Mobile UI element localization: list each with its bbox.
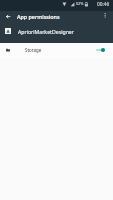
staticText: Storage: [25, 47, 42, 53]
button[interactable]: Toggle Storage permission: [96, 43, 105, 57]
button[interactable]: Storage: [0, 43, 113, 58]
staticText: AprioriMarketDesigner: [18, 28, 74, 35]
staticText: App permissions: [17, 13, 60, 20]
button[interactable]: Navigate up: [0, 11, 16, 25]
staticText: 52%: [76, 1, 84, 6]
staticText: 00:46: [97, 1, 110, 8]
button[interactable]: More options: [99, 11, 113, 25]
